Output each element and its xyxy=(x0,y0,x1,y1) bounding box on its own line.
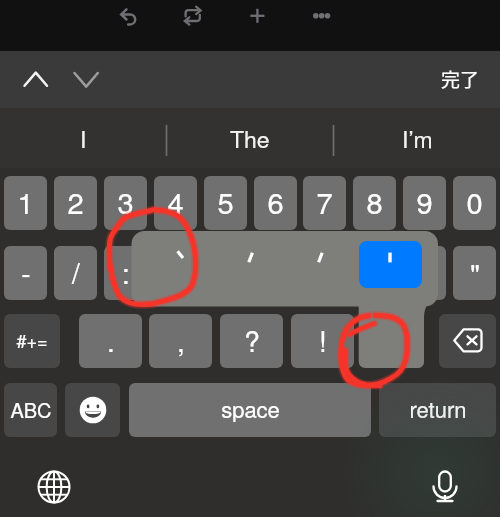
button[interactable]: @ xyxy=(403,246,446,300)
button[interactable]: space xyxy=(129,383,371,437)
button[interactable]: / xyxy=(54,246,97,300)
button[interactable]: Voice input xyxy=(417,459,473,515)
staticText: ; xyxy=(172,252,180,292)
button[interactable]: & xyxy=(353,246,396,300)
staticText: The xyxy=(230,122,270,155)
button[interactable]: 8 xyxy=(353,176,396,230)
button[interactable]: - xyxy=(4,246,47,300)
button[interactable] xyxy=(289,241,352,288)
button[interactable]: 6 xyxy=(254,176,297,230)
button[interactable]: 完了 xyxy=(437,62,484,96)
staticText: ? xyxy=(244,320,260,360)
button[interactable]: 3 xyxy=(104,176,147,230)
staticText: 8 xyxy=(366,181,383,223)
button[interactable]: : xyxy=(104,246,147,300)
staticText: space xyxy=(221,393,280,425)
staticText: . xyxy=(107,320,115,360)
button[interactable]: I’m xyxy=(337,108,497,168)
staticText: 完了 xyxy=(441,65,480,93)
button[interactable]: #+= xyxy=(4,314,60,368)
button[interactable]: ; xyxy=(154,246,197,300)
staticText: 9 xyxy=(416,181,433,223)
staticText: I xyxy=(80,122,87,155)
staticText: #+= xyxy=(16,327,48,353)
button[interactable] xyxy=(359,241,422,288)
button[interactable]: 0 xyxy=(453,176,496,230)
button[interactable]: Change keyboard xyxy=(26,459,82,515)
button[interactable] xyxy=(219,241,282,288)
button[interactable]: 5 xyxy=(204,176,247,230)
staticText: 3 xyxy=(117,181,134,223)
button[interactable]: return xyxy=(379,383,496,437)
button[interactable]: Repeat xyxy=(178,1,208,30)
staticText: - xyxy=(21,252,31,292)
staticText: 1 xyxy=(17,181,34,223)
button[interactable]: 7 xyxy=(303,176,346,230)
button[interactable]: 1 xyxy=(4,176,47,230)
button[interactable]: Emoji xyxy=(65,383,120,437)
button[interactable]: Previous xyxy=(16,62,56,96)
staticText: / xyxy=(72,252,80,292)
button[interactable]: ! xyxy=(291,314,354,368)
button[interactable]: Undo xyxy=(114,1,144,30)
staticText: $ xyxy=(317,252,333,292)
staticText: ABC xyxy=(10,395,52,424)
button[interactable]: ABC xyxy=(4,383,57,437)
staticText: 6 xyxy=(267,181,284,223)
button[interactable] xyxy=(149,241,212,288)
staticText: @ xyxy=(410,252,439,292)
button[interactable]: Next xyxy=(66,62,106,96)
staticText: , xyxy=(177,320,185,360)
staticText: I’m xyxy=(402,122,433,155)
button[interactable]: 2 xyxy=(54,176,97,230)
staticText: ! xyxy=(319,320,327,360)
button[interactable]: , xyxy=(149,314,212,368)
button[interactable]: 4 xyxy=(154,176,197,230)
staticText: 0 xyxy=(466,181,483,223)
button[interactable]: ’ xyxy=(361,314,424,368)
button[interactable]: $ xyxy=(303,246,346,300)
button[interactable]: Backspace xyxy=(439,314,496,368)
button[interactable]: " xyxy=(453,246,496,300)
staticText: 4 xyxy=(167,181,184,223)
staticText: : xyxy=(122,252,130,292)
staticText: ’ xyxy=(389,320,396,360)
button[interactable]: ? xyxy=(220,314,283,368)
button[interactable]: 9 xyxy=(403,176,446,230)
staticText: & xyxy=(365,252,384,292)
button[interactable]: More options xyxy=(305,1,338,30)
button[interactable]: The xyxy=(170,108,330,168)
staticText: 7 xyxy=(316,181,333,223)
button[interactable]: I xyxy=(3,108,163,168)
button[interactable]: . xyxy=(79,314,142,368)
staticText: return xyxy=(409,393,467,425)
button[interactable]: Add xyxy=(241,1,274,30)
staticText: 2 xyxy=(67,181,84,223)
staticText: 5 xyxy=(217,181,234,223)
staticText: " xyxy=(470,252,480,292)
